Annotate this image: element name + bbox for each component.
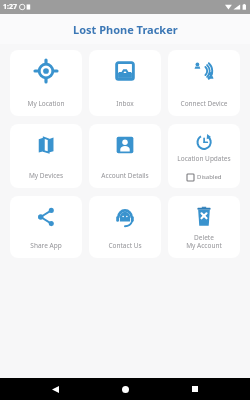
button[interactable]: Contact Us — [89, 196, 161, 258]
staticText: Inbox — [90, 99, 160, 108]
button[interactable]: Home — [110, 378, 140, 400]
button[interactable]: My Location — [10, 50, 82, 116]
staticText: Share App — [11, 241, 81, 250]
staticText: My Devices — [11, 171, 81, 180]
staticText: Account Details — [90, 171, 160, 180]
button[interactable]: My Devices — [10, 124, 82, 188]
button[interactable]: Inbox — [89, 50, 161, 116]
staticText: Disabled — [197, 173, 222, 181]
staticText: Contact Us — [90, 241, 160, 250]
button[interactable]: Location Updates — [168, 124, 240, 188]
staticText: Connect Device — [169, 99, 239, 108]
staticText: Lost Phone Tracker — [73, 22, 178, 37]
staticText: My Location — [11, 99, 81, 108]
button[interactable]: Account Details — [89, 124, 161, 188]
staticText: Delete My Account — [169, 233, 239, 250]
button[interactable]: Disabled — [185, 172, 224, 182]
button[interactable]: Connect Device — [168, 50, 240, 116]
button[interactable]: Delete My Account — [168, 196, 240, 258]
staticText: 1:27 — [3, 2, 17, 12]
button[interactable]: Share App — [10, 196, 82, 258]
button[interactable]: Back — [40, 378, 70, 400]
staticText: Location Updates — [168, 154, 240, 163]
button[interactable]: Recents — [180, 378, 210, 400]
